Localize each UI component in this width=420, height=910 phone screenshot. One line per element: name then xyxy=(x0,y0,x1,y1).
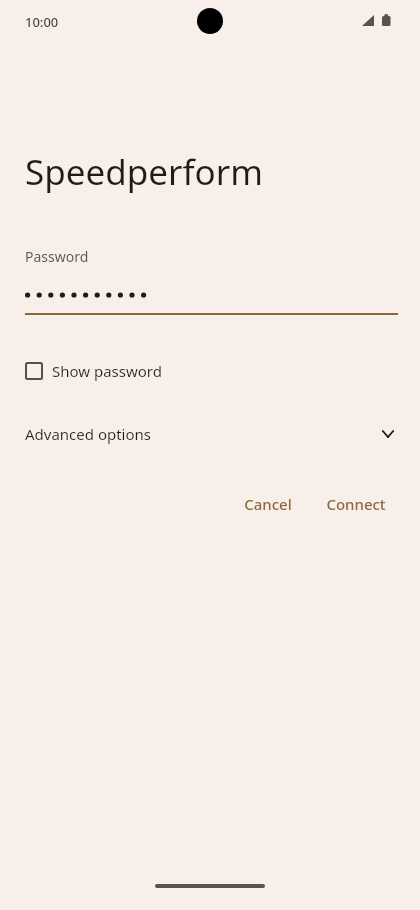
staticText: Cancel xyxy=(244,494,292,514)
button[interactable]: Cancel xyxy=(232,486,304,522)
button[interactable] xyxy=(25,283,398,307)
staticText: Speedperform xyxy=(25,148,263,196)
button[interactable]: Connect xyxy=(314,486,398,522)
button[interactable]: Advanced options xyxy=(25,418,398,450)
staticText: Connect xyxy=(326,494,386,514)
staticText: 10:00 xyxy=(25,13,59,31)
staticText: Password xyxy=(25,247,89,266)
other: Expand advanced options xyxy=(378,424,398,444)
staticText: Show password xyxy=(52,361,162,381)
staticText: Advanced options xyxy=(25,424,152,444)
button[interactable]: Show password xyxy=(25,357,162,385)
